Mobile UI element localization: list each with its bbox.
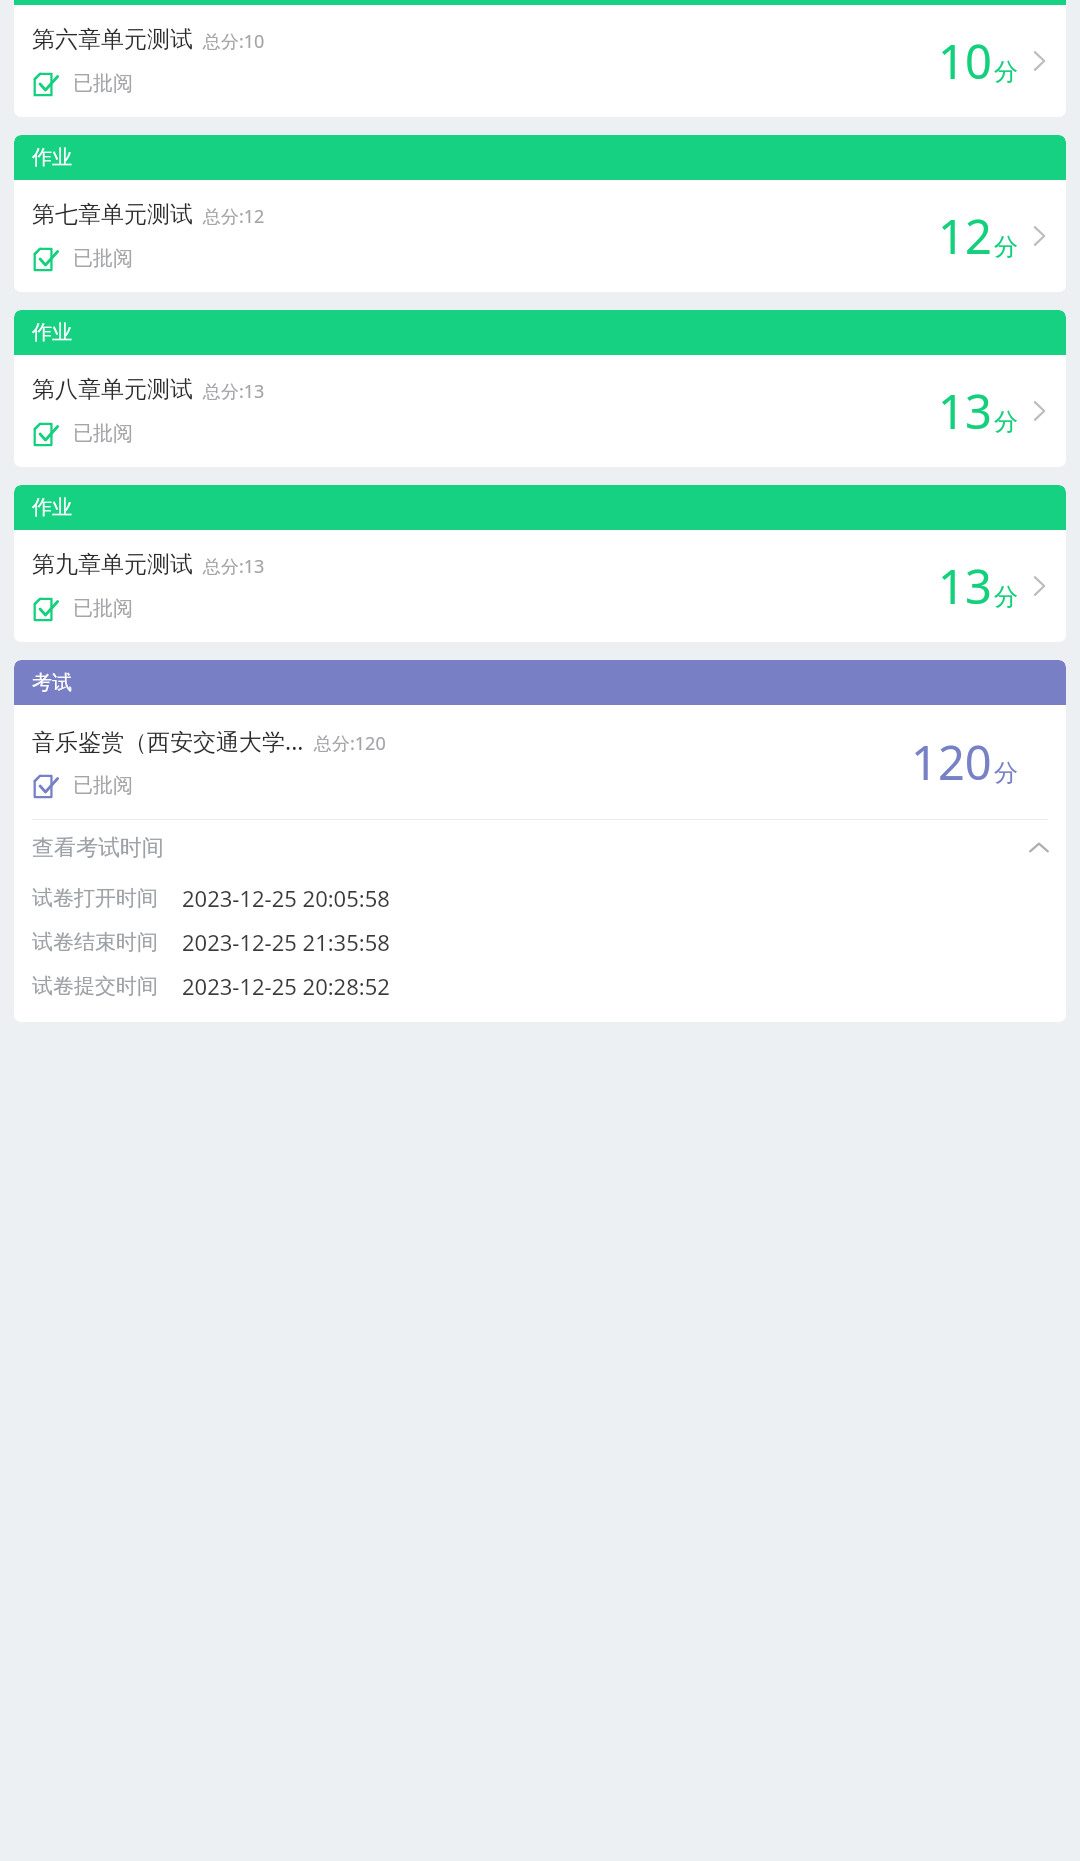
staticText: 总分:13 (203, 554, 265, 579)
button[interactable]: 第九章单元测试 (14, 530, 1066, 642)
staticText: 考试 (32, 670, 72, 695)
staticText: 总分:13 (203, 379, 265, 404)
staticText: 2023-12-25 21:35:58 (182, 927, 390, 957)
staticText: 13 (938, 554, 992, 618)
staticText: 已批阅 (73, 773, 133, 798)
staticText: 10 (938, 29, 992, 93)
button[interactable]: 作业 (14, 485, 1066, 530)
staticText: 分 (994, 232, 1018, 262)
staticText: 作业 (32, 495, 72, 520)
button[interactable]: 音乐鉴赏（西安交通大学... (14, 705, 1066, 819)
staticText: 已批阅 (73, 246, 133, 271)
staticText: 第九章单元测试 (32, 550, 193, 579)
staticText: 作业 (32, 320, 72, 345)
other: Collapse exam time (1026, 835, 1052, 861)
staticText: 总分:120 (314, 731, 386, 756)
button[interactable]: 考试 (14, 660, 1066, 705)
button[interactable]: 第六章单元测试 (14, 5, 1066, 117)
staticText: 已批阅 (73, 421, 133, 446)
staticText: 试卷提交时间 (32, 973, 158, 999)
staticText: 查看考试时间 (32, 834, 1026, 862)
staticText: 试卷结束时间 (32, 929, 158, 955)
button[interactable]: 作业 (14, 310, 1066, 355)
staticText: 第八章单元测试 (32, 375, 193, 404)
staticText: 13 (938, 379, 992, 443)
staticText: 2023-12-25 20:28:52 (182, 971, 390, 1001)
staticText: 总分:12 (203, 204, 265, 229)
staticText: 已批阅 (73, 596, 133, 621)
staticText: 分 (994, 758, 1018, 788)
staticText: 分 (994, 57, 1018, 87)
staticText: 分 (994, 407, 1018, 437)
staticText: 作业 (32, 145, 72, 170)
staticText: 试卷打开时间 (32, 885, 158, 911)
staticText: 120 (911, 730, 992, 794)
staticText: 音乐鉴赏（西安交通大学... (32, 725, 304, 756)
staticText: 已批阅 (73, 71, 133, 96)
button[interactable]: 查看考试时间 (32, 820, 1052, 876)
staticText: 第六章单元测试 (32, 25, 193, 54)
staticText: 第七章单元测试 (32, 200, 193, 229)
staticText: 12 (938, 204, 992, 268)
staticText: 2023-12-25 20:05:58 (182, 883, 390, 913)
button[interactable]: 作业 (14, 135, 1066, 180)
staticText: 分 (994, 582, 1018, 612)
staticText: 总分:10 (203, 29, 265, 54)
button[interactable]: 第七章单元测试 (14, 180, 1066, 292)
button[interactable]: 第八章单元测试 (14, 355, 1066, 467)
